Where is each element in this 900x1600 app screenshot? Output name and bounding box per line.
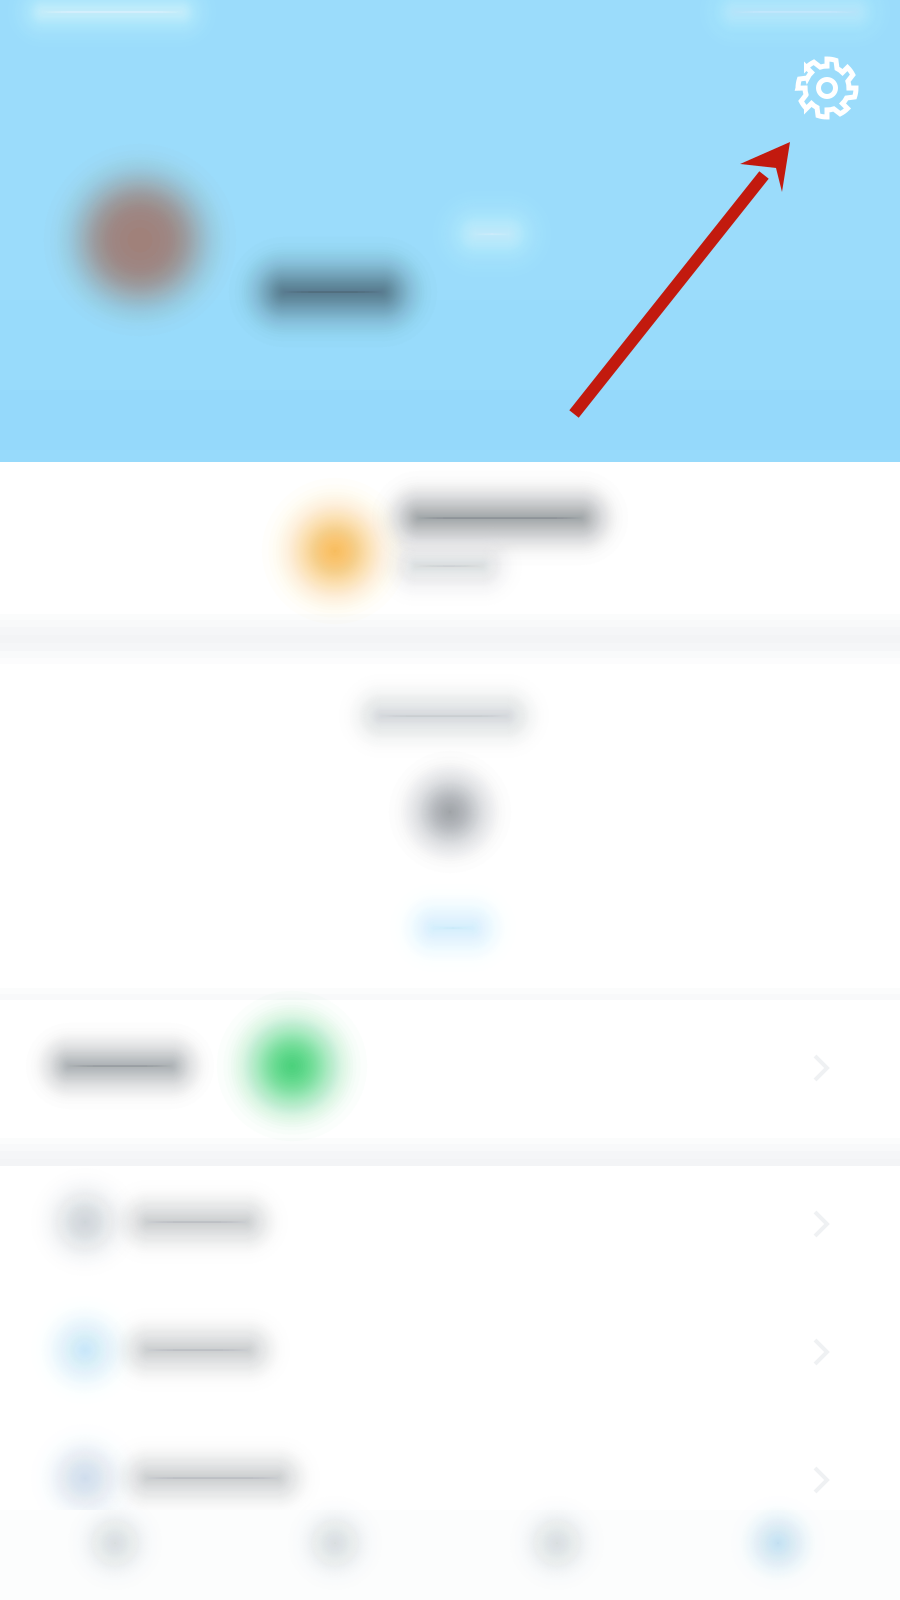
button[interactable]: Settings [772,33,882,143]
button[interactable] [0,0,900,1600]
button[interactable] [0,1000,900,1138]
button[interactable] [0,0,900,1600]
button[interactable] [0,462,900,614]
button[interactable]: Messages [0,0,900,1600]
button[interactable]: Discover [0,0,900,1600]
button[interactable]: Home [0,0,900,1600]
button[interactable]: Me [0,0,900,1600]
button[interactable] [0,0,900,1600]
